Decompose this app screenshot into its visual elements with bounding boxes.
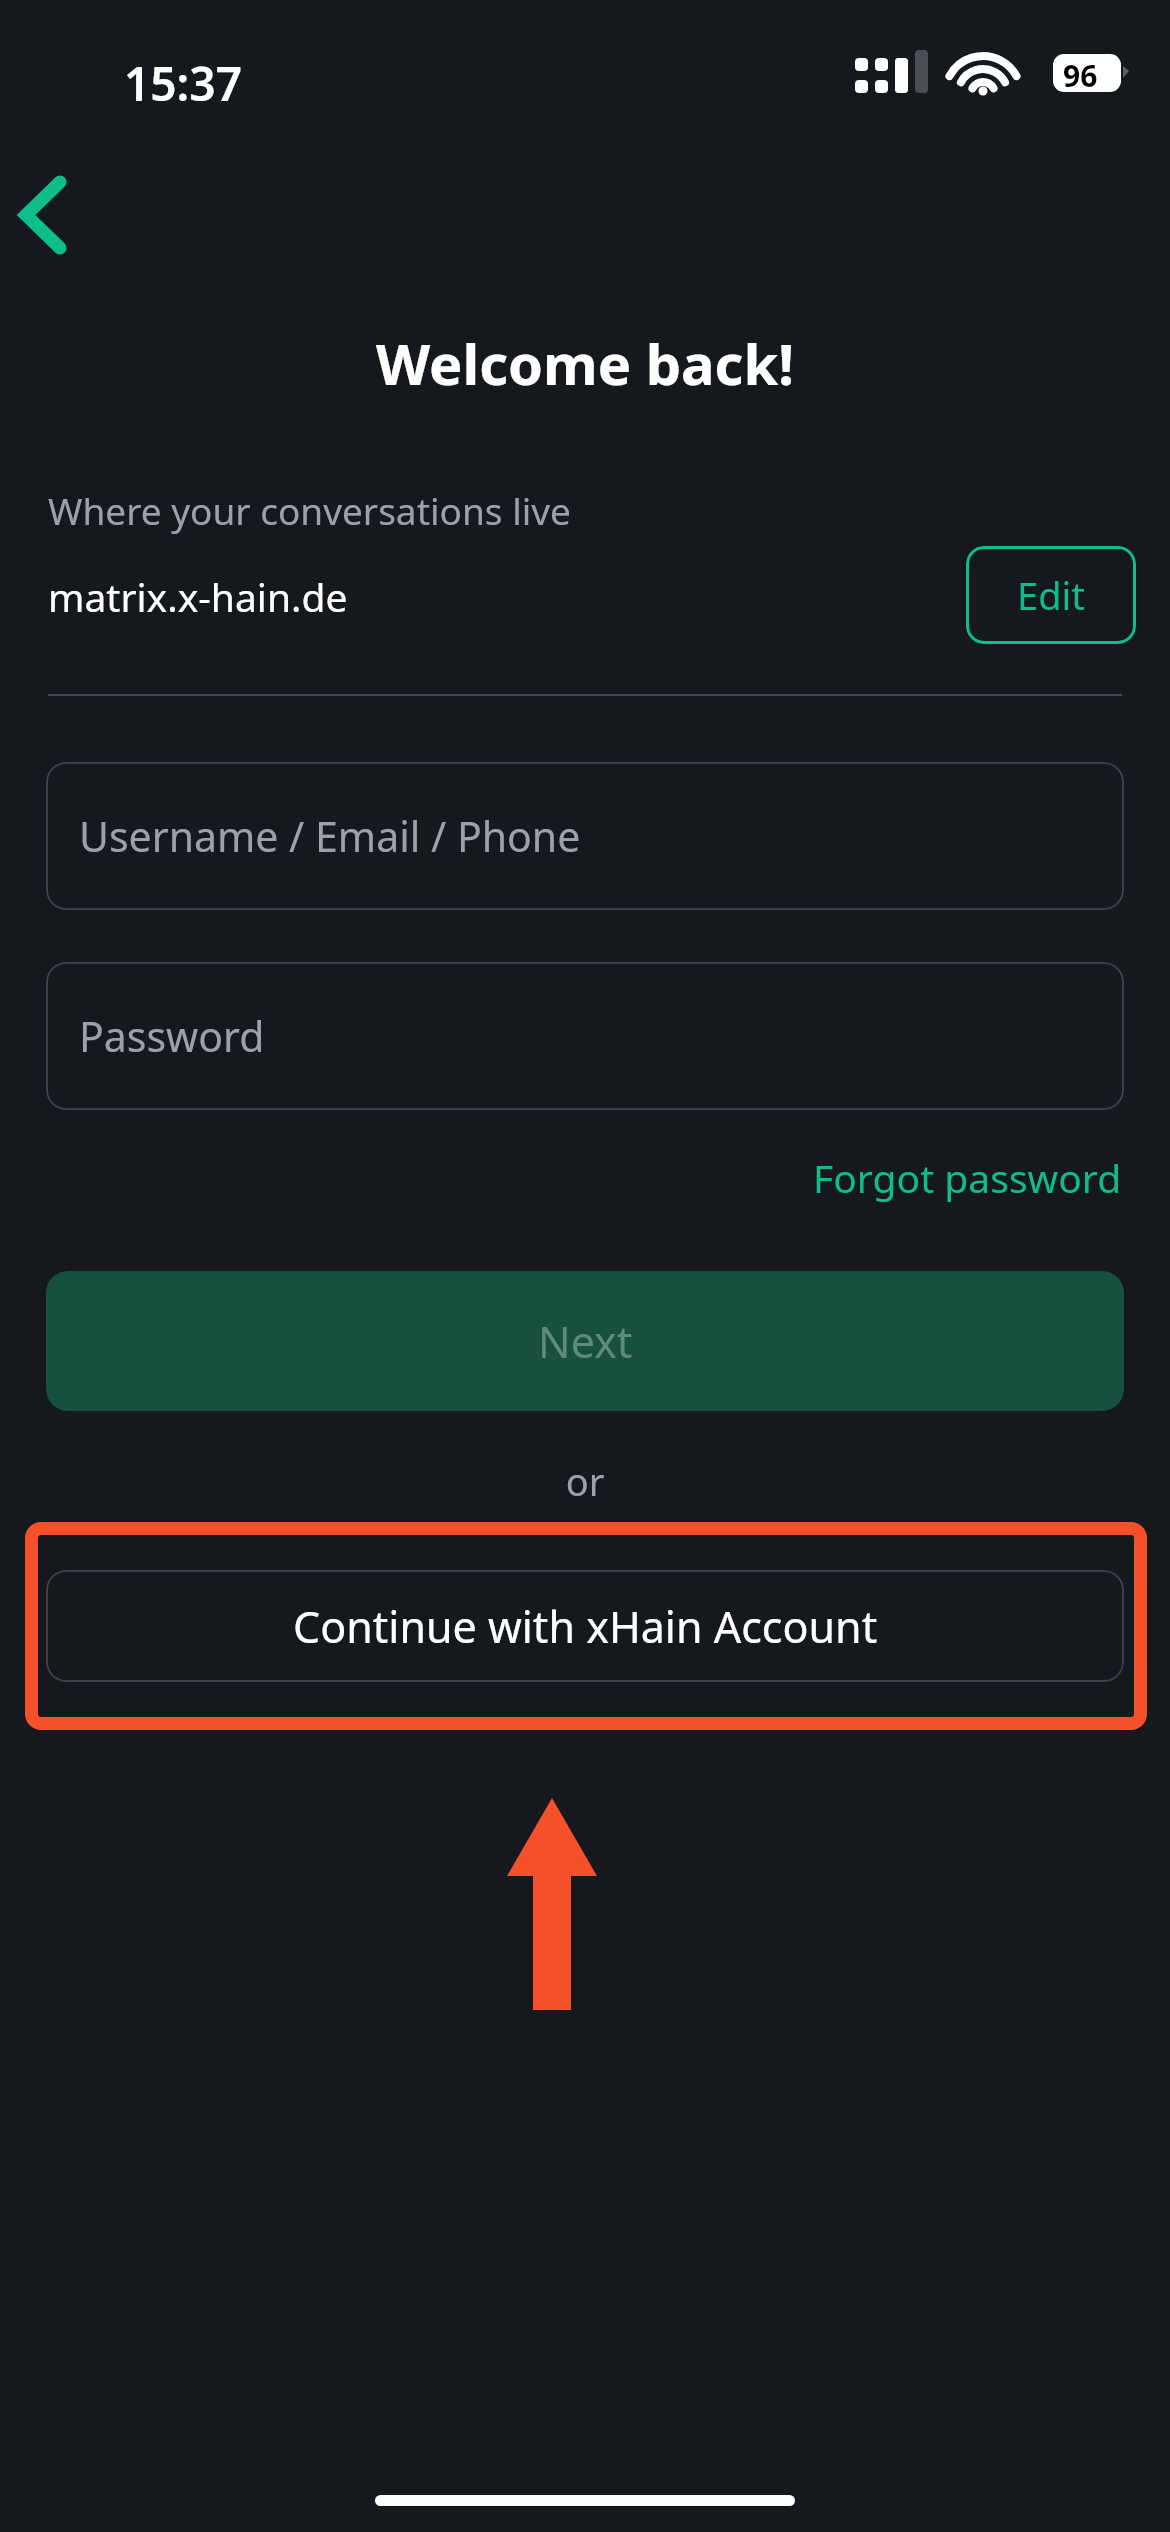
staticText: Continue with xHain Account — [293, 1597, 878, 1656]
staticText: Where your conversations live — [48, 485, 571, 535]
button[interactable]: Edit — [966, 546, 1136, 644]
button[interactable]: Back — [2, 160, 98, 256]
staticText: Next — [538, 1312, 633, 1371]
button[interactable]: Forgot password — [690, 1135, 1122, 1219]
staticText: Forgot password — [813, 1151, 1122, 1204]
button[interactable]: Username / Email / Phone — [46, 762, 1124, 910]
button[interactable]: Password — [46, 962, 1124, 1110]
staticText: 96 — [1063, 55, 1098, 96]
staticText: or — [0, 1455, 1170, 1507]
staticText: matrix.x-hain.de — [48, 570, 348, 623]
button[interactable]: Continue with xHain Account — [46, 1570, 1124, 1682]
staticText: Welcome back! — [0, 325, 1170, 401]
staticText: 15:37 — [124, 52, 242, 115]
staticText: Username / Email / Phone — [79, 808, 581, 864]
button[interactable]: Next — [46, 1271, 1124, 1411]
staticText: Password — [79, 1008, 265, 1064]
staticText: Edit — [1017, 569, 1086, 621]
